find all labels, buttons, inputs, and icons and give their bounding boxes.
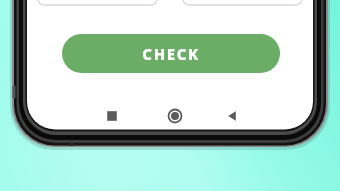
button[interactable]: Recent apps <box>100 104 124 128</box>
button[interactable]: CHECK <box>62 34 280 73</box>
staticText: CHECK <box>142 44 200 64</box>
button[interactable]: Home <box>163 104 187 128</box>
button[interactable]: Back <box>220 104 244 128</box>
